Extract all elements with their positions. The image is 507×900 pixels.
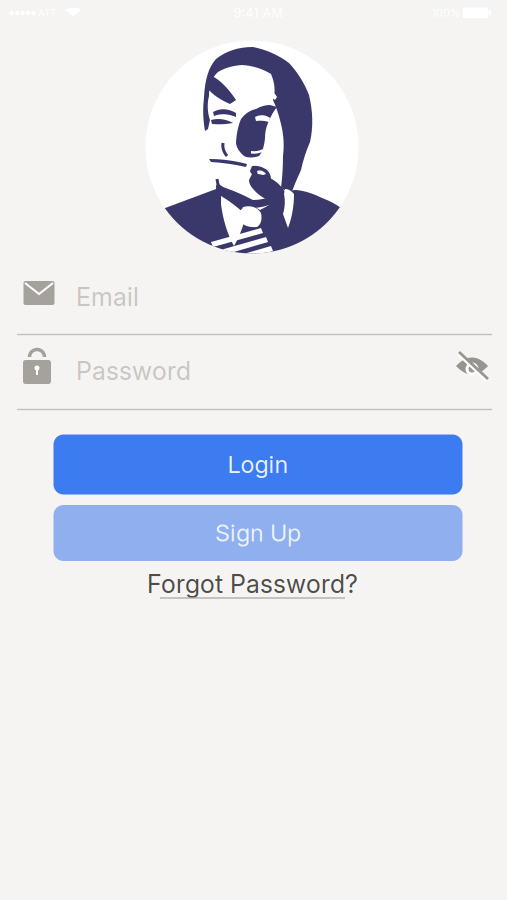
staticText: 100% bbox=[432, 7, 460, 19]
staticText: Password bbox=[76, 356, 191, 386]
staticText: Password bbox=[43, 356, 158, 386]
textField[interactable]: Email bbox=[43, 282, 463, 312]
staticText: Forgot Password? bbox=[147, 569, 358, 599]
staticText: Sign Up bbox=[215, 519, 301, 547]
staticText: Login bbox=[227, 450, 288, 479]
staticText: Email bbox=[43, 282, 106, 312]
button[interactable]: Sign Up bbox=[53, 505, 462, 561]
staticText: 9:41 AM bbox=[233, 5, 282, 20]
staticText: ATT bbox=[38, 7, 56, 19]
staticText: Email bbox=[76, 282, 139, 312]
button[interactable]: Login bbox=[53, 434, 462, 494]
button[interactable]: Show password bbox=[455, 355, 489, 383]
secureTextField[interactable]: Password bbox=[43, 356, 463, 386]
button[interactable]: Forgot Password? bbox=[92, 566, 412, 602]
